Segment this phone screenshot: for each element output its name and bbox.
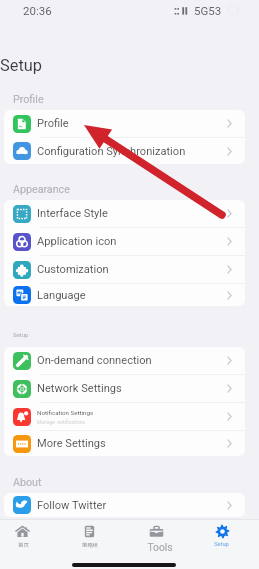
button[interactable]: Application icon [4, 228, 245, 255]
staticText: Setup [0, 56, 43, 75]
staticText: Appearance [13, 183, 70, 196]
staticText: 首页 [18, 541, 29, 549]
staticText: Notification Settings [37, 409, 94, 416]
staticText: Profile [13, 93, 44, 106]
staticText: Network Settings [37, 382, 122, 395]
staticText: Application icon [37, 235, 117, 248]
staticText: 5G53 [194, 4, 222, 17]
staticText: Setup [13, 331, 29, 338]
button[interactable]: Network Settings [4, 375, 245, 402]
staticText: About [13, 476, 42, 489]
button[interactable]: Setup [197, 520, 249, 551]
button[interactable]: Tools [131, 520, 183, 551]
staticText: Follow Twitter [37, 499, 107, 512]
staticText: Profile [37, 117, 69, 130]
staticText: On-demand connection [37, 354, 152, 367]
staticText: Interface Style [37, 207, 108, 220]
staticText: 20:36 [23, 4, 52, 17]
button[interactable]: More Settings [4, 431, 245, 456]
staticText: Configuration Synchronization [37, 145, 186, 158]
button[interactable]: Interface Style [4, 200, 245, 227]
staticText: More Settings [37, 437, 106, 450]
staticText: Language [37, 289, 86, 302]
staticText: Customization [37, 263, 109, 276]
button[interactable]: Home [0, 520, 49, 551]
button[interactable]: Configuration Synchronization [4, 138, 245, 164]
staticText: Manage notifications [37, 419, 86, 425]
button[interactable]: Policy groups [64, 520, 116, 551]
button[interactable]: On-demand connection [4, 347, 245, 374]
button[interactable]: Language [4, 284, 245, 306]
staticText: Tools [147, 541, 173, 553]
staticText: 策略组 [82, 541, 98, 549]
button[interactable]: Profile [4, 110, 245, 137]
button[interactable]: Customization [4, 256, 245, 283]
staticText: Setup [214, 541, 229, 548]
button[interactable]: Notification Settings [4, 403, 245, 430]
button[interactable]: Follow Twitter [4, 493, 245, 517]
